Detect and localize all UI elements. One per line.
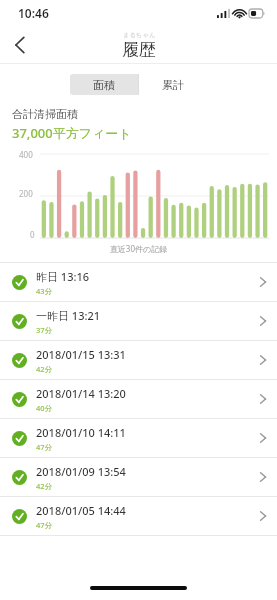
- staticText: 2018/01/05 14:44: [36, 503, 126, 518]
- button[interactable]: 2018/01/14 13:20: [0, 380, 277, 418]
- button[interactable]: 累計: [139, 74, 207, 95]
- staticText: 37分: [36, 325, 53, 335]
- staticText: 2018/01/14 13:20: [36, 386, 126, 401]
- staticText: 一昨日 13:21: [36, 308, 101, 323]
- staticText: 面積: [93, 78, 115, 92]
- button[interactable]: Back: [0, 26, 40, 64]
- staticText: 直近30件の記録: [0, 243, 277, 254]
- staticText: 400: [19, 149, 33, 160]
- staticText: 2018/01/15 13:31: [36, 347, 126, 362]
- staticText: 200: [19, 188, 33, 199]
- button[interactable]: 面積: [70, 74, 138, 95]
- button[interactable]: 一昨日 13:21: [0, 302, 277, 340]
- staticText: 42分: [36, 481, 53, 491]
- staticText: 昨日 13:16: [36, 269, 90, 284]
- staticText: 2018/01/09 13:54: [36, 464, 126, 479]
- staticText: 40分: [36, 403, 53, 413]
- staticText: 0: [30, 229, 35, 240]
- staticText: 10:46: [18, 5, 49, 21]
- button[interactable]: 2018/01/15 13:31: [0, 341, 277, 379]
- staticText: 47分: [36, 442, 53, 452]
- staticText: 履歴: [122, 39, 156, 60]
- button[interactable]: 昨日 13:16: [0, 263, 277, 301]
- staticText: 43分: [36, 286, 53, 296]
- button[interactable]: 2018/01/09 13:54: [0, 458, 277, 496]
- staticText: まるちゃん: [123, 31, 156, 39]
- staticText: 37,000平方フィート: [12, 124, 132, 142]
- button[interactable]: 2018/01/10 14:11: [0, 419, 277, 457]
- staticText: 2018/01/10 14:11: [36, 425, 126, 440]
- staticText: 47分: [36, 520, 53, 530]
- staticText: 合計清掃面積: [12, 107, 78, 121]
- staticText: 累計: [162, 78, 184, 92]
- button[interactable]: 2018/01/05 14:44: [0, 497, 277, 535]
- staticText: 42分: [36, 364, 53, 374]
